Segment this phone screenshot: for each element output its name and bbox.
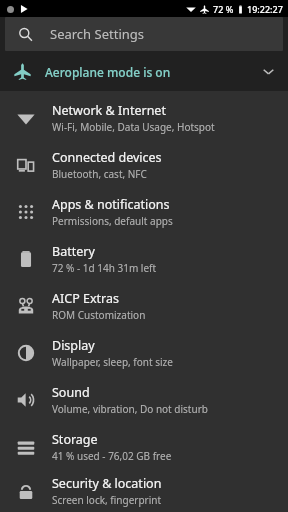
staticText: Volume, vibration, Do not disturb [52,402,208,416]
staticText: Connected devices [52,149,162,166]
staticText: Network & Internet [52,102,166,119]
button[interactable]: Battery [0,235,288,282]
button[interactable]: Aeroplane mode is on [0,52,288,91]
staticText: ROM Customization [52,308,146,322]
staticText: Battery [52,243,95,260]
staticText: Wallpaper, sleep, font size [52,355,173,369]
staticText: 41 % used - 76,02 GB free [52,449,172,463]
other: Expand [261,64,276,79]
staticText: Bluetooth, cast, NFC [52,167,147,181]
staticText: Search Settings [50,25,144,43]
staticText: Apps & notifications [52,196,170,213]
button[interactable]: Sound [0,376,288,423]
staticText: Aeroplane mode is on [45,64,171,80]
staticText: Security & location [52,475,162,492]
staticText: 72 % [213,3,234,15]
button[interactable]: Connected devices [0,141,288,188]
staticText: Wi-Fi, Mobile, Data Usage, Hotspot [52,120,215,134]
staticText: 19:22:27 [247,3,283,15]
button[interactable]: AICP Extras [0,282,288,329]
staticText: Display [52,337,95,354]
button[interactable]: Security & location [0,470,288,512]
button[interactable]: Storage [0,423,288,470]
staticText: Sound [52,384,90,401]
staticText: AICP Extras [52,290,119,307]
button[interactable]: Network & Internet [0,94,288,141]
button[interactable]: Apps & notifications [0,188,288,235]
staticText: Storage [52,431,98,448]
staticText: 72 % - 1d 14h 31m left [52,261,157,275]
button[interactable]: Search Settings [5,17,283,51]
staticText: Permissions, default apps [52,214,173,228]
staticText: Screen lock, fingerprint [52,493,162,507]
button[interactable]: Display [0,329,288,376]
